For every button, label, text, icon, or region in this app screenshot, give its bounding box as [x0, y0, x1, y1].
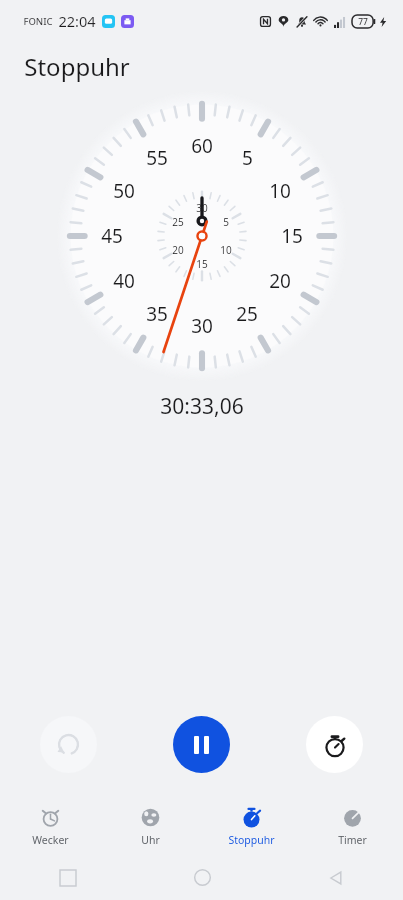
other: NFC: [260, 16, 271, 27]
staticText: 20: [269, 268, 291, 294]
staticText: 55: [146, 145, 168, 171]
other: Stumm: [296, 16, 308, 28]
staticText: 15: [196, 257, 208, 271]
staticText: 15: [281, 223, 303, 249]
staticText: 77: [358, 16, 368, 28]
staticText: 30: [191, 313, 213, 339]
button[interactable]: Runde: [306, 716, 363, 773]
staticText: 22:04: [58, 11, 96, 31]
other: Startbildschirm: [194, 869, 211, 886]
staticText: Stoppuhr: [228, 833, 275, 847]
staticText: 60: [191, 133, 213, 159]
staticText: FONIC: [23, 15, 53, 28]
other: Signal: [334, 16, 346, 28]
staticText: 10: [269, 178, 291, 204]
staticText: 5: [223, 215, 229, 229]
staticText: Wecker: [32, 833, 69, 847]
staticText: 30:33,06: [160, 392, 244, 421]
other: Lädt: [378, 17, 388, 27]
button[interactable]: Zurücksetzen: [40, 716, 97, 773]
staticText: 40: [113, 268, 135, 294]
other: Zurück: [328, 870, 344, 886]
staticText: 30: [196, 201, 208, 215]
staticText: Timer: [338, 833, 367, 847]
staticText: 20: [172, 243, 184, 257]
staticText: 45: [101, 223, 123, 249]
button[interactable]: Uhr: [100, 799, 201, 855]
button[interactable]: Stoppuhr: [201, 799, 302, 855]
other: Übersicht: [60, 870, 76, 886]
staticText: 35: [146, 301, 168, 327]
staticText: Uhr: [141, 833, 160, 847]
other: Standort: [278, 16, 289, 27]
staticText: 25: [236, 301, 258, 327]
staticText: Stoppuhr: [24, 50, 130, 83]
staticText: 50: [113, 178, 135, 204]
staticText: 10: [220, 243, 232, 257]
other: WLAN: [314, 15, 327, 28]
button[interactable]: Pause: [173, 716, 230, 773]
button[interactable]: Wecker: [0, 799, 100, 855]
staticText: 5: [242, 145, 253, 171]
button[interactable]: Timer: [302, 799, 403, 855]
staticText: 25: [172, 215, 184, 229]
